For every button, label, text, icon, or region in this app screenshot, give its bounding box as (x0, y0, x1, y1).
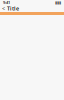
staticText: < (2, 5, 5, 12)
staticText: ▮▮▮ (55, 0, 61, 5)
staticText: 9:41 (3, 0, 10, 5)
staticText: Title (7, 5, 19, 12)
